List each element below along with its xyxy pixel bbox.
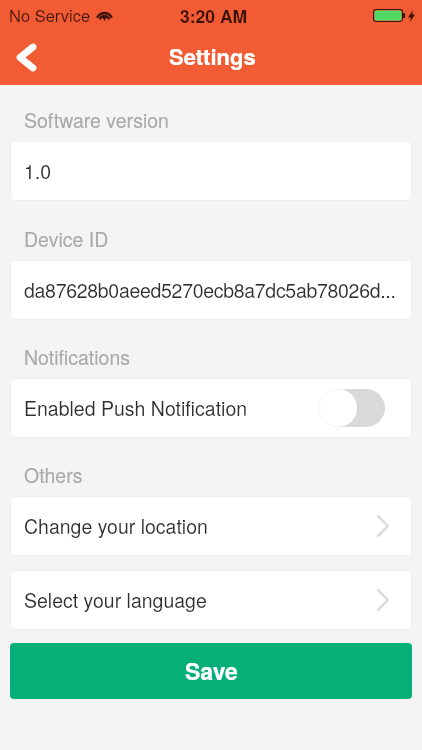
button[interactable]: Save [10, 643, 412, 699]
button[interactable]: Select your language [10, 570, 412, 630]
staticText: Notifications [24, 343, 131, 371]
staticText: da87628b0aeed5270ecb8a7dc5ab78026d... [24, 276, 396, 304]
staticText: Enabled Push Notification [24, 394, 248, 422]
staticText: 3:20 AM [180, 3, 248, 28]
staticText: Change your location [24, 512, 208, 540]
staticText: Select your language [24, 586, 207, 614]
staticText: No Service [9, 3, 91, 27]
staticText: 1.0 [24, 157, 52, 185]
button[interactable]: Change your location [10, 496, 412, 556]
staticText: Save [185, 654, 238, 687]
button[interactable]: Back [6, 36, 46, 85]
staticText: Settings [169, 40, 256, 72]
staticText: Software version [24, 106, 169, 134]
button[interactable]: Enabled Push Notification [10, 378, 412, 438]
staticText: Device ID [24, 225, 109, 253]
staticText: Others [24, 461, 83, 489]
